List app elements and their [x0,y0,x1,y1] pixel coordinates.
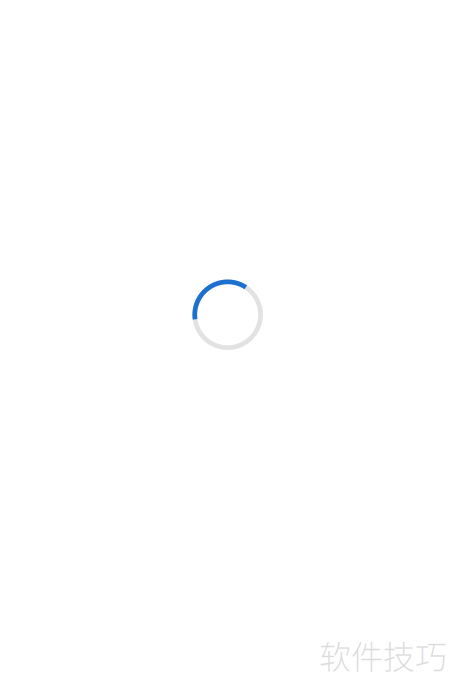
staticText: 软件技巧 [319,632,447,678]
